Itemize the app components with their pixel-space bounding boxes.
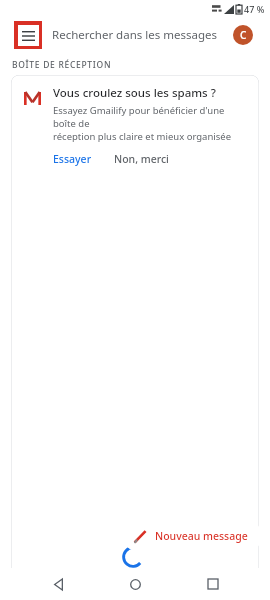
button[interactable]: Essayer [53,152,92,166]
staticText: 47 % [244,3,265,15]
button[interactable]: Non, merci [114,152,169,166]
button[interactable]: Rechercher dans les messages [52,27,233,43]
staticText: Nouveau message [155,529,248,543]
staticText: Non, merci [114,152,169,166]
staticText: BOÎTE DE RÉCEPTION [12,59,112,71]
button[interactable]: Applications récentes [193,568,233,600]
staticText: C [240,28,247,42]
button[interactable]: Accueil [115,568,155,600]
staticText: Essayez Gmailify pour bénéficier d'une b… [53,104,249,143]
button[interactable]: Compte [233,25,253,45]
button[interactable]: Vous croulez sous les spams ? [11,75,259,600]
staticText: Rechercher dans les messages [52,27,217,43]
button[interactable]: Menu [14,21,42,49]
button[interactable]: Retour [38,568,78,600]
staticText: Vous croulez sous les spams ? [53,85,216,101]
button[interactable]: Nouveau message [123,520,262,552]
staticText: Essayer [53,152,92,166]
